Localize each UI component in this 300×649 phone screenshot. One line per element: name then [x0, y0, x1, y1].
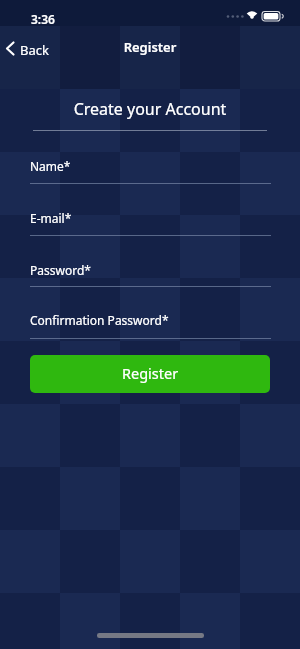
- staticText: E-mail*: [30, 210, 72, 226]
- button[interactable]: [30, 254, 270, 288]
- staticText: Password*: [30, 262, 91, 278]
- staticText: Name*: [30, 158, 71, 174]
- button[interactable]: Register: [30, 355, 270, 393]
- staticText: Back: [20, 41, 49, 59]
- button[interactable]: Back: [0, 34, 60, 62]
- staticText: Create your Account: [0, 98, 300, 120]
- button[interactable]: [30, 150, 270, 185]
- staticText: Register: [122, 363, 179, 383]
- button[interactable]: [30, 202, 270, 237]
- staticText: Register: [0, 38, 300, 56]
- button[interactable]: [30, 304, 270, 340]
- staticText: Confirmation Password*: [30, 312, 169, 328]
- staticText: 3:36: [31, 11, 55, 27]
